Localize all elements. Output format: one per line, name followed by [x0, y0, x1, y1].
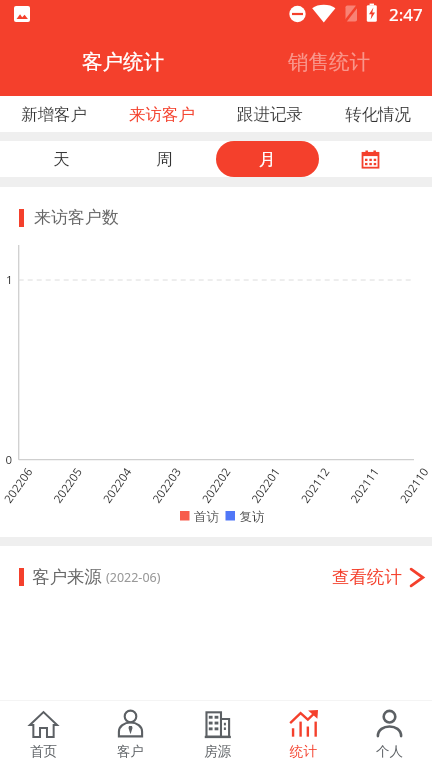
button[interactable]: 客户统计 [20, 28, 226, 96]
button[interactable]: 跟进记录 [216, 96, 324, 132]
staticText: 统计 [290, 743, 317, 760]
staticText: 客户 [117, 743, 144, 760]
staticText: 客户统计 [82, 49, 164, 75]
staticText: 跟进记录 [237, 104, 303, 125]
staticText: 新增客户 [21, 104, 87, 125]
staticText: 销售统计 [288, 49, 370, 75]
button[interactable]: 天 [10, 141, 113, 177]
staticText: (2022-06) [106, 569, 161, 586]
staticText: 2:47 [389, 3, 423, 26]
button[interactable]: 首页 [0, 701, 87, 768]
button[interactable]: 房源 [174, 701, 260, 768]
staticText: 首页 [30, 743, 57, 760]
button[interactable]: 销售统计 [226, 28, 432, 96]
staticText: 月 [259, 149, 276, 170]
button[interactable]: 统计 [260, 701, 346, 768]
staticText: 周 [156, 149, 173, 170]
button[interactable]: 转化情况 [324, 96, 432, 132]
staticText: 房源 [204, 743, 231, 760]
button[interactable]: 来访客户 [108, 96, 216, 132]
button[interactable]: 月 [216, 141, 319, 177]
staticText: 个人 [376, 743, 403, 760]
button[interactable]: 查看统计 [332, 566, 424, 588]
staticText: 查看统计 [332, 566, 402, 588]
staticText: 客户来源 [32, 566, 102, 588]
button[interactable]: 客户 [87, 701, 174, 768]
staticText: 来访客户数 [34, 207, 119, 228]
button[interactable]: 周 [113, 141, 216, 177]
button[interactable]: 个人 [346, 701, 432, 768]
staticText: 天 [53, 149, 70, 170]
staticText: 来访客户 [129, 104, 195, 125]
button[interactable]: 选择日期 [319, 141, 422, 177]
button[interactable]: 新增客户 [0, 96, 108, 132]
staticText: 转化情况 [345, 104, 411, 125]
